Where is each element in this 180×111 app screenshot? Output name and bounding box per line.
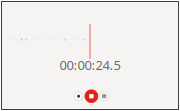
button[interactable]: Stop recording [85, 89, 98, 103]
staticText: 00:00:24.5 [59, 56, 120, 74]
button[interactable]: Rewind [74, 92, 83, 101]
button[interactable]: Options [100, 92, 109, 101]
